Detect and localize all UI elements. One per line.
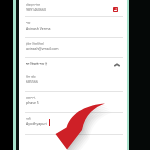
- staticText: मकान नं.: [26, 96, 36, 100]
- staticText: phase 5: [26, 100, 39, 105]
- button[interactable]: घर किसके नाम है: [26, 61, 123, 70]
- button[interactable]: नाम: [26, 21, 123, 33]
- button[interactable]: पिन कोड: [26, 75, 123, 86]
- button[interactable]: ईमेल (वैकल्पिक): [26, 42, 123, 53]
- staticText: मोबाइल नंबर: [26, 3, 40, 7]
- button[interactable]: गली: [26, 117, 123, 128]
- staticText: गली: [26, 117, 31, 121]
- staticText: पिन कोड: [26, 75, 36, 79]
- staticText: Avinash Verma: [26, 26, 51, 31]
- staticText: avinash@vmail.com: [26, 46, 59, 51]
- staticText: Ayodhyapuri: [26, 121, 47, 126]
- staticText: नाम: [26, 21, 31, 25]
- staticText: 9891460660: [26, 7, 47, 12]
- staticText: 685566: [26, 79, 39, 84]
- staticText: ईमेल (वैकल्पिक): [26, 42, 44, 46]
- button[interactable]: मोबाइल नंबर: [26, 3, 123, 14]
- button[interactable]: Contacts: [113, 7, 118, 12]
- button[interactable]: मकान नं.: [26, 96, 123, 107]
- staticText: घर किसके नाम है: [26, 61, 48, 66]
